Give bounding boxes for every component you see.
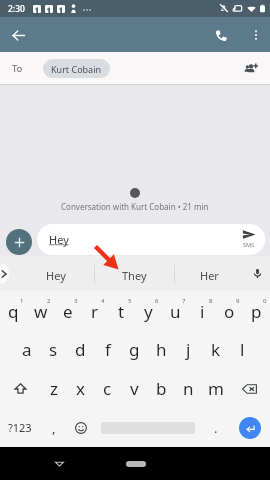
staticText: t — [118, 300, 125, 323]
staticText: s — [49, 338, 58, 361]
staticText: o — [224, 300, 235, 323]
button[interactable]: z — [40, 369, 67, 408]
button[interactable]: a — [13, 330, 40, 369]
staticText: y — [144, 300, 153, 323]
staticText: l — [240, 338, 245, 361]
staticText: Her — [200, 268, 219, 283]
staticText: u — [170, 300, 181, 323]
staticText: g — [129, 338, 140, 361]
button[interactable]: n — [175, 369, 202, 408]
button[interactable]: k — [202, 330, 229, 369]
button[interactable]: Voice input — [244, 256, 270, 291]
staticText: 3 — [74, 297, 78, 305]
staticText: 8 — [209, 297, 213, 305]
button[interactable]: c — [94, 369, 121, 408]
button[interactable]: l — [229, 330, 256, 369]
staticText: 0 — [263, 297, 267, 305]
button[interactable]: g — [121, 330, 148, 369]
button[interactable]: Home — [121, 452, 151, 476]
button[interactable]: Emoji — [67, 408, 94, 447]
button[interactable]: Hey — [37, 224, 265, 255]
button[interactable]: Enter — [229, 408, 270, 447]
button[interactable]: Her — [175, 256, 244, 291]
staticText: They — [122, 268, 147, 283]
button[interactable]: Add attachment — [6, 229, 32, 255]
button[interactable]: They — [95, 256, 174, 291]
button[interactable]: 3 — [54, 291, 81, 330]
button[interactable]: 9 — [216, 291, 243, 330]
button[interactable]: , — [40, 408, 67, 447]
button[interactable]: Kurt Cobain — [43, 59, 110, 78]
staticText: ?123 — [8, 420, 32, 435]
staticText: 9 — [236, 297, 240, 305]
button[interactable]: Back — [47, 452, 71, 476]
button[interactable]: Hey — [18, 256, 94, 291]
button[interactable]: x — [67, 369, 94, 408]
button[interactable]: h — [148, 330, 175, 369]
staticText: e — [63, 300, 73, 323]
staticText: a — [22, 338, 32, 361]
staticText: SMS — [243, 241, 255, 248]
staticText: d — [75, 338, 86, 361]
staticText: Conversation with Kurt Cobain • 21 min — [61, 201, 209, 212]
button[interactable]: . — [202, 408, 229, 447]
button[interactable]: Back — [1, 18, 35, 52]
staticText: v — [130, 377, 139, 400]
staticText: 2:30 — [8, 3, 25, 15]
button[interactable]: Call — [205, 19, 237, 51]
button[interactable]: j — [175, 330, 202, 369]
staticText: Hey — [49, 232, 69, 247]
staticText: f — [105, 338, 111, 361]
staticText: p — [251, 300, 262, 323]
button[interactable]: ?123 — [0, 408, 40, 447]
staticText: n — [183, 377, 194, 400]
staticText: x — [76, 377, 85, 400]
staticText: 2 — [47, 297, 51, 305]
button[interactable]: 2 — [27, 291, 54, 330]
button[interactable]: d — [67, 330, 94, 369]
button[interactable]: v — [121, 369, 148, 408]
staticText: . — [214, 419, 218, 437]
button[interactable]: Expand suggestions — [0, 256, 18, 291]
staticText: , — [52, 419, 56, 437]
staticText: 1 — [20, 297, 24, 305]
staticText: Kurt Cobain — [51, 63, 102, 75]
button[interactable]: 6 — [135, 291, 162, 330]
staticText: c — [103, 377, 112, 400]
staticText: k — [211, 338, 221, 361]
button[interactable]: 8 — [189, 291, 216, 330]
button[interactable]: Backspace — [229, 369, 270, 408]
button[interactable]: 0 — [243, 291, 270, 330]
button[interactable]: 7 — [162, 291, 189, 330]
staticText: r — [91, 300, 99, 323]
button[interactable]: 4 — [81, 291, 108, 330]
staticText: m — [208, 377, 224, 400]
staticText: b — [156, 377, 167, 400]
staticText: 5 — [128, 297, 132, 305]
staticText: j — [186, 338, 191, 361]
staticText: To — [12, 62, 23, 75]
staticText: i — [200, 300, 205, 323]
button[interactable]: 1 — [0, 291, 27, 330]
staticText: h — [156, 338, 167, 361]
button[interactable]: f — [94, 330, 121, 369]
staticText: q — [8, 300, 19, 323]
staticText: 7 — [182, 297, 186, 305]
button[interactable]: More options — [243, 22, 269, 48]
staticText: 6 — [155, 297, 159, 305]
staticText: 4 — [101, 297, 105, 305]
button[interactable]: 5 — [108, 291, 135, 330]
button[interactable]: s — [40, 330, 67, 369]
button[interactable]: Shift — [0, 369, 40, 408]
staticText: w — [34, 300, 48, 323]
button[interactable]: b — [148, 369, 175, 408]
staticText: z — [50, 377, 58, 400]
button[interactable]: Space — [94, 408, 202, 447]
staticText: Hey — [46, 268, 66, 283]
button[interactable]: Add people — [238, 55, 264, 81]
button[interactable]: m — [202, 369, 229, 408]
